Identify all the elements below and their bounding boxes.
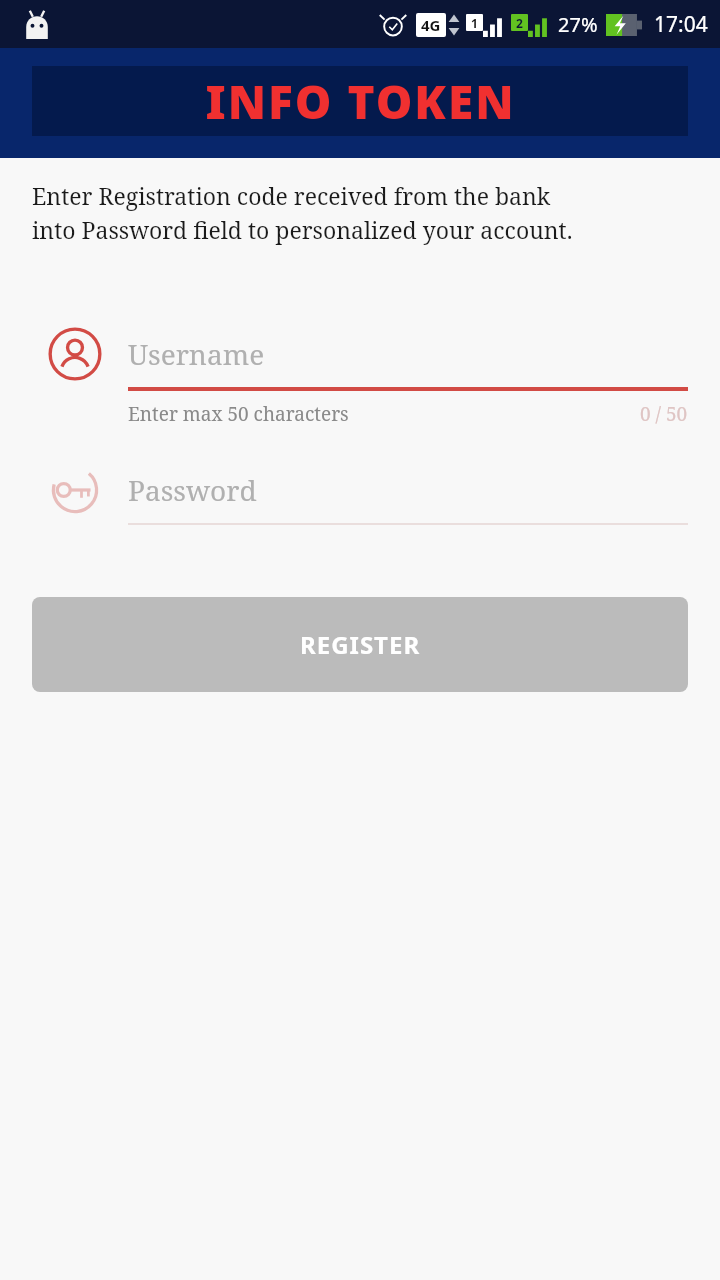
staticText: 17:04 [654,10,708,39]
staticText: into Password field to personalized your… [32,214,573,245]
button[interactable]: Username [0,327,720,381]
staticText: 4G [421,15,441,35]
staticText: REGISTER [300,628,421,661]
other: Password [48,463,102,517]
button[interactable]: REGISTER [32,597,688,692]
staticText: Username [128,335,265,373]
other: Username [48,327,102,381]
staticText: 0 / 50 [640,401,688,427]
button[interactable]: Password [0,463,720,517]
staticText: 27% [558,11,598,38]
staticText: Enter max 50 characters [128,401,349,427]
staticText: INFO TOKEN [205,70,516,133]
staticText: Enter Registration code received from th… [32,180,551,211]
staticText: Password [128,471,257,509]
staticText: 2 [516,15,523,31]
staticText: 1 [471,15,478,31]
